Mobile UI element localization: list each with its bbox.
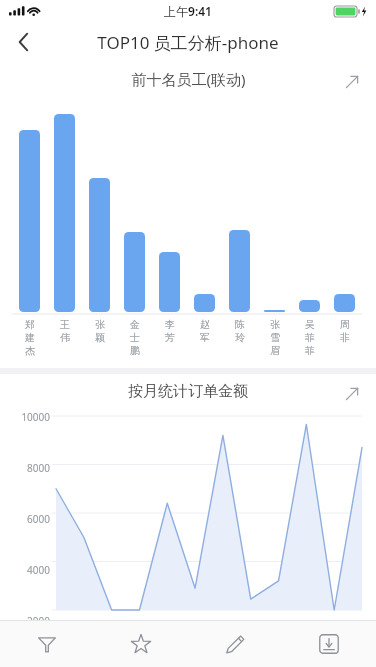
staticText: 玲 — [235, 331, 245, 344]
button[interactable]: Filter — [0, 621, 94, 667]
staticText: TOP10 员工分析-phone — [97, 31, 279, 54]
staticText: 王 — [60, 318, 70, 331]
button[interactable]: Expand chart — [340, 382, 364, 406]
staticText: 吴 — [305, 318, 315, 331]
button[interactable]: Edit — [188, 621, 282, 667]
staticText: 颖 — [95, 331, 105, 344]
staticText: 2000 — [27, 614, 50, 620]
staticText: 陈 — [235, 318, 245, 331]
staticText: 建 — [25, 331, 35, 344]
staticText: 军 — [200, 331, 210, 344]
staticText: 菲 — [305, 344, 315, 357]
staticText: 鹏 — [130, 344, 140, 357]
staticText: 菲 — [305, 331, 315, 344]
staticText: 张 — [270, 318, 280, 331]
staticText: 按月统计订单金额 — [128, 382, 248, 401]
staticText: 眉 — [270, 344, 280, 357]
staticText: 上午9:41 — [164, 3, 212, 19]
staticText: 芳 — [165, 331, 175, 344]
button[interactable]: Back — [0, 22, 48, 62]
staticText: 4000 — [27, 563, 50, 577]
staticText: 6000 — [27, 512, 50, 526]
staticText: 士 — [130, 331, 140, 344]
staticText: 赵 — [200, 318, 210, 331]
staticText: 杰 — [25, 344, 35, 357]
staticText: 张 — [95, 318, 105, 331]
button[interactable]: Download — [282, 621, 376, 667]
staticText: 金 — [130, 318, 140, 331]
staticText: 伟 — [60, 331, 70, 344]
staticText: 郑 — [25, 318, 35, 331]
staticText: 周 — [340, 318, 350, 331]
button[interactable]: Expand chart — [340, 70, 364, 94]
staticText: 前十名员工(联动) — [131, 69, 246, 89]
staticText: 雪 — [270, 331, 280, 344]
staticText: 10000 — [21, 410, 50, 424]
button[interactable]: Favorite — [94, 621, 188, 667]
staticText: 李 — [165, 318, 175, 331]
staticText: 8000 — [27, 461, 50, 475]
staticText: 非 — [340, 331, 350, 344]
